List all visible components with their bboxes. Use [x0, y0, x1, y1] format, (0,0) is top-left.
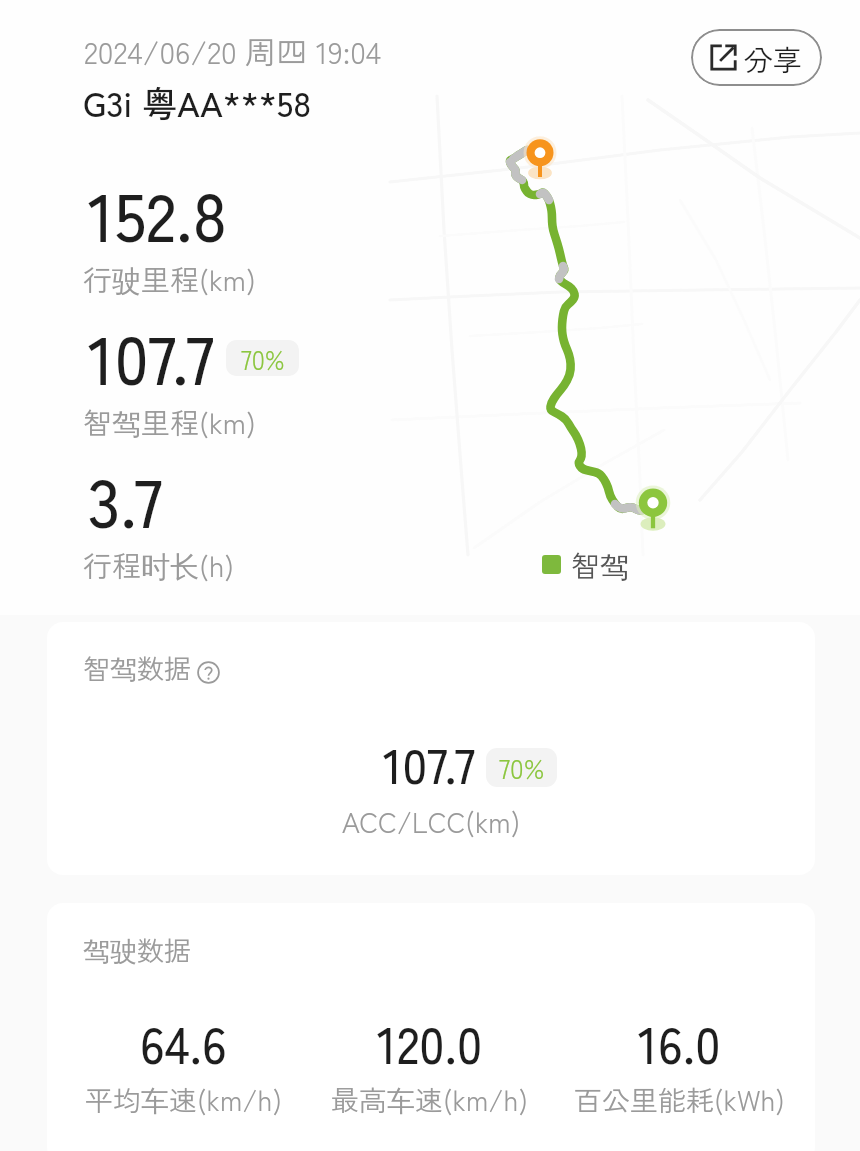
staticText: 智驾数据 — [83, 648, 191, 687]
staticText: 3.7 — [88, 450, 163, 547]
staticText: 16.0 — [638, 1006, 721, 1078]
staticText: 152.8 — [88, 164, 227, 261]
staticText: 2024/06/20 周四 19:04 — [84, 28, 382, 73]
staticText: 行驶里程(km) — [83, 257, 256, 299]
staticText: 最高车速(km/h) — [331, 1079, 528, 1120]
button[interactable]: About assisted-driving data — [197, 661, 220, 684]
staticText: 70% — [499, 748, 545, 787]
staticText: 智驾 — [571, 543, 630, 585]
staticText: G3i 粤AA***58 — [83, 76, 311, 127]
staticText: 107.7 — [383, 727, 476, 798]
staticText: 107.7 — [88, 307, 214, 404]
button[interactable]: 分享 — [691, 29, 822, 86]
staticText: 70% — [241, 340, 285, 376]
staticText: 平均车速(km/h) — [85, 1079, 282, 1120]
button[interactable]: Trip route map — [390, 95, 860, 555]
staticText: 分享 — [744, 37, 803, 79]
staticText: 120.0 — [377, 1006, 483, 1078]
staticText: 百公里能耗(kWh) — [574, 1079, 785, 1120]
staticText: 64.6 — [140, 1006, 227, 1078]
staticText: ACC/LCC(km) — [47, 801, 815, 842]
staticText: 智驾里程(km) — [83, 400, 256, 442]
staticText: 行程时长(h) — [83, 543, 235, 585]
staticText: 驾驶数据 — [83, 930, 191, 969]
